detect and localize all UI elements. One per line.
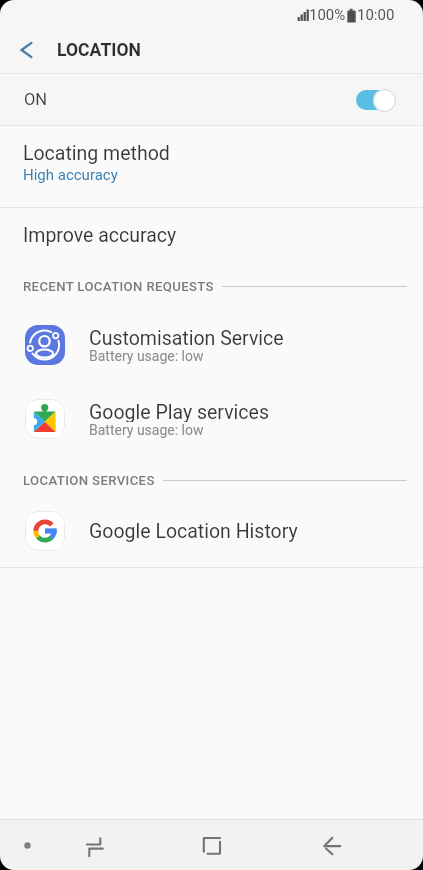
button[interactable]: Improve accuracy — [0, 208, 423, 263]
staticText: 100% — [309, 6, 346, 24]
button[interactable] — [72, 822, 120, 870]
staticText: Battery usage: low — [89, 422, 204, 438]
staticText: LOCATION SERVICES — [23, 473, 155, 488]
button[interactable] — [307, 822, 355, 870]
button[interactable]: Customisation Service — [0, 308, 423, 382]
staticText: Google Play services — [89, 401, 269, 422]
button[interactable] — [188, 822, 236, 870]
staticText: ON — [24, 90, 48, 109]
staticText: LOCATION — [57, 40, 142, 61]
staticText: Locating method — [23, 142, 170, 165]
button[interactable] — [356, 88, 396, 112]
button[interactable]: Google Location History — [0, 494, 423, 568]
staticText: Customisation Service — [89, 327, 284, 348]
staticText: High accuracy — [23, 166, 118, 184]
button[interactable]: Google Play services — [0, 382, 423, 456]
staticText: Google Location History — [89, 520, 298, 543]
staticText: Battery usage: low — [89, 348, 204, 364]
button[interactable] — [9, 32, 45, 68]
button[interactable]: Locating method — [0, 126, 423, 207]
staticText: Improve accuracy — [23, 224, 177, 247]
staticText: 10:00 — [357, 6, 395, 24]
staticText: RECENT LOCATION REQUESTS — [23, 279, 214, 294]
button[interactable]: ON — [0, 74, 423, 125]
